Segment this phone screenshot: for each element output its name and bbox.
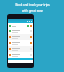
button[interactable] [9, 28, 32, 34]
button[interactable] [9, 46, 32, 52]
button[interactable]: Menu [8, 19, 33, 23]
staticText: Book and track your trips [15, 3, 50, 7]
button[interactable] [9, 25, 32, 27]
button[interactable] [9, 40, 32, 46]
staticText: with great ease [22, 9, 43, 13]
button[interactable] [9, 52, 32, 58]
button[interactable] [9, 34, 32, 40]
